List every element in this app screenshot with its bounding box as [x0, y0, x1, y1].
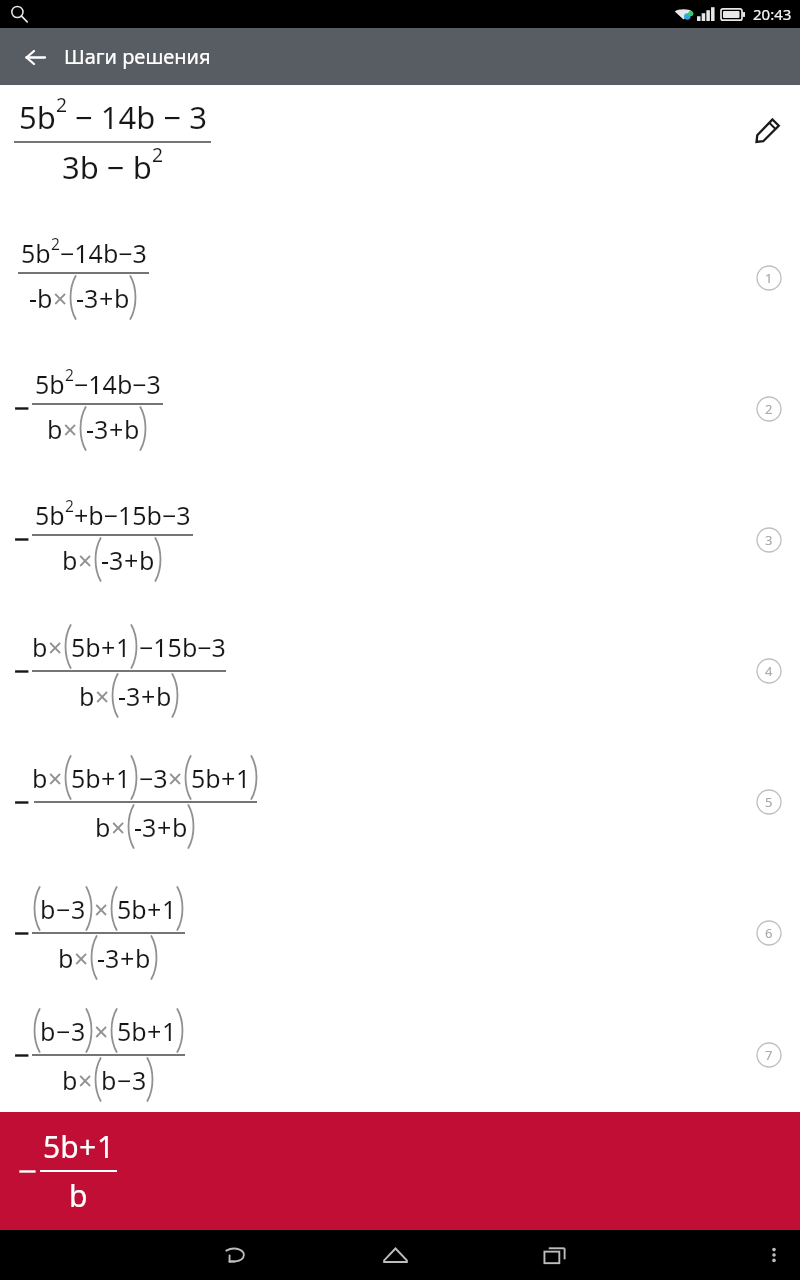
staticText: b [69, 1175, 88, 1216]
staticText: 20:43 [753, 4, 792, 24]
button[interactable]: 5b [0, 474, 800, 605]
button[interactable]: b [0, 998, 800, 1112]
staticText: -3 [76, 281, 99, 315]
staticText: 5 [765, 793, 773, 811]
button[interactable]: Step 4 [756, 658, 782, 684]
staticText: + [147, 1014, 162, 1048]
staticText: + [109, 412, 124, 446]
staticText: 1 [116, 761, 131, 795]
staticText: × [78, 543, 93, 577]
staticText: − [56, 892, 71, 926]
button[interactable]: Step 5 [756, 789, 782, 815]
staticText: b [95, 810, 111, 844]
button[interactable]: Recent apps [527, 1230, 583, 1280]
staticText: × [94, 1014, 109, 1048]
button[interactable]: 5b [0, 212, 800, 343]
staticText: + [147, 892, 162, 926]
button[interactable]: Home [367, 1230, 423, 1280]
staticText: b [32, 761, 48, 795]
staticText: -b [29, 281, 53, 315]
staticText: − [117, 1063, 132, 1097]
staticText: × [63, 412, 78, 446]
staticText: 2 [65, 495, 74, 516]
staticText: b [62, 1063, 78, 1097]
staticText: + [141, 679, 156, 713]
staticText: 2 [56, 91, 67, 117]
button[interactable]: Back [207, 1230, 263, 1280]
staticText: b [40, 892, 56, 926]
button[interactable]: More options [754, 1235, 794, 1275]
staticText: 5b [35, 367, 65, 401]
staticText: 5b [191, 761, 221, 795]
staticText: -3 [97, 941, 120, 975]
button[interactable]: Step 2 [756, 396, 782, 422]
staticText: 6 [765, 924, 773, 942]
button[interactable]: b [0, 736, 800, 867]
staticText: b [40, 1014, 56, 1048]
staticText: 1 [162, 892, 177, 926]
staticText: -3 [118, 679, 141, 713]
staticText: +b−15b−3 [74, 498, 191, 532]
staticText: 1 [97, 1126, 115, 1167]
staticText: b [124, 412, 140, 446]
staticText: 7 [765, 1046, 773, 1064]
staticText: b [114, 281, 130, 315]
staticText: b [135, 941, 151, 975]
staticText: b [32, 630, 48, 664]
staticText: + [124, 543, 139, 577]
button[interactable]: Edit [750, 113, 784, 147]
staticText: 5b [117, 892, 147, 926]
staticText: -3 [86, 412, 109, 446]
staticText: 5b [21, 236, 51, 270]
staticText: 5b [71, 761, 101, 795]
staticText: 3 [71, 892, 86, 926]
button[interactable]: Step 6 [756, 920, 782, 946]
staticText: × [94, 892, 109, 926]
button[interactable]: Step 3 [756, 527, 782, 553]
staticText: + [101, 761, 116, 795]
staticText: × [48, 630, 63, 664]
staticText: 2 [152, 141, 163, 167]
staticText: + [101, 630, 116, 664]
button[interactable]: Step 7 [756, 1042, 782, 1068]
button[interactable]: b [0, 867, 800, 998]
staticText: 1 [236, 761, 251, 795]
staticText: -3 [101, 543, 124, 577]
staticText: × [74, 941, 89, 975]
staticText: + [79, 1126, 97, 1167]
button[interactable]: Back [12, 34, 58, 80]
staticText: − 14b − 3 [67, 96, 207, 138]
staticText: Шаги решения [64, 43, 211, 70]
staticText: + [221, 761, 236, 795]
staticText: 2 [51, 233, 60, 254]
staticText: 2 [65, 364, 74, 385]
staticText: −14b−3 [74, 367, 161, 401]
staticText: + [157, 810, 172, 844]
staticText: 5b [43, 1126, 79, 1167]
staticText: 1 [116, 630, 131, 664]
staticText: b [156, 679, 172, 713]
staticText: 3b − b [62, 146, 152, 188]
button[interactable]: 5b [0, 1112, 800, 1230]
staticText: 5b [35, 498, 65, 532]
staticText: 1 [162, 1014, 177, 1048]
staticText: × [95, 679, 110, 713]
staticText: b [79, 679, 95, 713]
button[interactable]: 5b [0, 85, 800, 212]
staticText: × [78, 1063, 93, 1097]
staticText: b [62, 543, 78, 577]
staticText: 1 [765, 269, 773, 287]
staticText: -3 [134, 810, 157, 844]
button[interactable]: b [0, 605, 800, 736]
staticText: −14b−3 [60, 236, 147, 270]
staticText: + [120, 941, 135, 975]
button[interactable]: Step 1 [756, 265, 782, 291]
staticText: b [101, 1063, 117, 1097]
button[interactable]: Search [9, 4, 29, 24]
staticText: × [48, 761, 63, 795]
staticText: × [168, 761, 183, 795]
staticText: + [99, 281, 114, 315]
staticText: × [111, 810, 126, 844]
staticText: 3 [132, 1063, 147, 1097]
button[interactable]: 5b [0, 343, 800, 474]
